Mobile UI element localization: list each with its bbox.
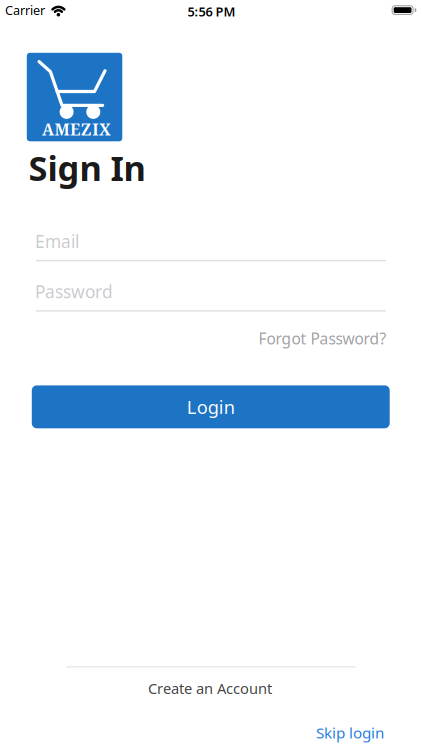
button[interactable]: Skip login [316,722,384,743]
button[interactable]: Password [36,280,386,313]
staticText: Create an Account [148,678,272,698]
staticText: AMEZIX [42,118,111,140]
staticText: 5:56 PM [187,3,235,20]
staticText: Sign In [28,144,145,191]
button[interactable]: Email [36,229,386,262]
staticText: Login [187,394,235,419]
button[interactable]: Login [32,385,390,428]
button[interactable]: Forgot Password? [259,328,387,349]
staticText: Email [35,229,79,253]
staticText: Skip login [316,722,384,743]
staticText: Password [35,280,113,303]
staticText: Forgot Password? [259,328,387,349]
button[interactable]: Create an Account [148,678,272,698]
staticText: Carrier [5,1,45,19]
